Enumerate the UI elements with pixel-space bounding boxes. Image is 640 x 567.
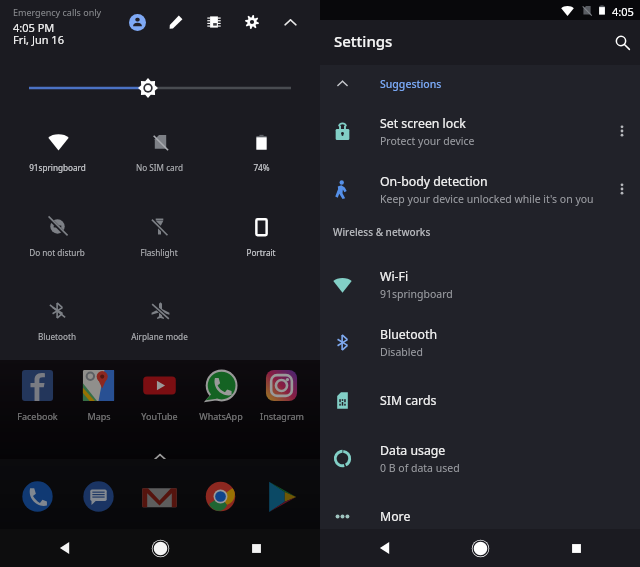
button[interactable]: Bluetooth	[320, 313, 640, 371]
staticText: On-body detection	[380, 173, 488, 190]
button[interactable]: Collapse quick settings	[276, 8, 304, 36]
button[interactable]: 74%	[210, 130, 312, 186]
staticText: Keep your device unlocked while it's on …	[380, 192, 594, 206]
button[interactable]: Back	[367, 529, 403, 567]
staticText: 0 B of data used	[380, 461, 460, 475]
button[interactable]: Chrome	[190, 476, 251, 517]
staticText: Airplane mode	[131, 331, 188, 342]
button[interactable]: Phone	[7, 476, 68, 517]
staticText: Wireless & networks	[333, 225, 431, 239]
button[interactable]: YouTube	[129, 367, 190, 422]
staticText: 91springboard	[380, 287, 453, 301]
staticText: SIM cards	[380, 392, 437, 409]
button[interactable]: Messages	[68, 476, 129, 517]
staticText: Protect your device	[380, 134, 475, 148]
staticText: Bluetooth	[38, 331, 76, 342]
button[interactable]: Home	[462, 529, 498, 567]
button[interactable]: Set screen lock	[320, 102, 640, 160]
button[interactable]: Recents	[558, 529, 594, 567]
staticText: Flashlight	[140, 247, 178, 258]
button[interactable]: Memory	[200, 8, 228, 36]
staticText: 74%	[253, 162, 270, 173]
button[interactable]: More	[320, 487, 640, 545]
button[interactable]: All apps	[149, 446, 171, 468]
staticText: 4:05 PM	[13, 20, 55, 35]
staticText: Do not disturb	[29, 247, 85, 258]
button[interactable]: SIM cards	[320, 371, 640, 429]
staticText: 91springboard	[29, 162, 86, 173]
button[interactable]: Back	[47, 529, 83, 567]
button[interactable]: Edit quick settings	[162, 8, 190, 36]
button[interactable]: More options	[604, 160, 640, 218]
staticText: Data usage	[380, 442, 446, 459]
button[interactable]: Portrait	[210, 215, 312, 271]
button[interactable]: Flashlight	[108, 215, 210, 271]
button[interactable]: Bluetooth	[6, 299, 108, 355]
staticText: More	[380, 508, 411, 525]
button[interactable]: Wi-Fi	[320, 255, 640, 313]
staticText: Fri, Jun 16	[13, 32, 64, 47]
button[interactable]: Maps	[68, 367, 129, 422]
staticText: YouTube	[141, 410, 178, 422]
staticText: WhatsApp	[199, 410, 243, 422]
button[interactable]: Home	[142, 529, 178, 567]
staticText: Bluetooth	[380, 326, 438, 343]
staticText: Portrait	[246, 247, 276, 258]
button[interactable]: Search	[606, 26, 638, 58]
staticText: Facebook	[17, 410, 58, 422]
staticText: Wi-Fi	[380, 268, 409, 285]
button[interactable]: 91springboard	[6, 130, 108, 186]
staticText: Suggestions	[380, 77, 442, 91]
button[interactable]: User account	[123, 8, 151, 36]
button[interactable]: Airplane mode	[108, 299, 210, 355]
staticText: Settings	[334, 31, 393, 51]
button[interactable]: On-body detection	[320, 160, 640, 218]
button[interactable]: Recents	[238, 529, 274, 567]
button[interactable]: Suggestions	[320, 65, 640, 102]
staticText: 4:05	[612, 4, 634, 19]
staticText: Maps	[87, 410, 111, 422]
staticText: Set screen lock	[380, 115, 466, 132]
button[interactable]: No SIM card	[108, 130, 210, 186]
button[interactable]: Facebook	[7, 367, 68, 422]
button[interactable]: Brightness	[0, 72, 320, 104]
button[interactable]: Do not disturb	[6, 215, 108, 271]
button[interactable]: Data usage	[320, 429, 640, 487]
button[interactable]: More options	[604, 102, 640, 160]
staticText: Emergency calls only	[13, 6, 102, 18]
button[interactable]: Settings	[238, 8, 266, 36]
staticText: Instagram	[260, 410, 304, 422]
staticText: No SIM card	[136, 162, 183, 173]
button[interactable]: WhatsApp	[190, 367, 251, 422]
button[interactable]: Instagram	[251, 367, 312, 422]
button[interactable]: Play	[251, 476, 312, 517]
button[interactable]: Gmail	[129, 476, 190, 517]
staticText: Disabled	[380, 345, 423, 359]
